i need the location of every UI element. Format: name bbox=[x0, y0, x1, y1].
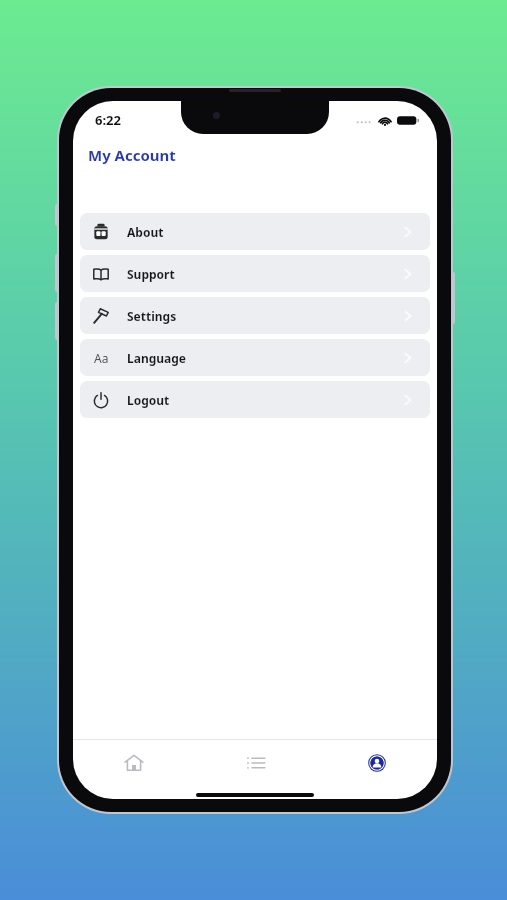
staticText: My Account bbox=[88, 145, 176, 165]
button[interactable]: Support bbox=[80, 255, 430, 292]
button[interactable]: Settings bbox=[80, 297, 430, 334]
staticText: About bbox=[127, 224, 164, 240]
button[interactable]: Logout bbox=[80, 381, 430, 418]
staticText: Settings bbox=[127, 308, 177, 324]
button[interactable]: List bbox=[195, 740, 316, 785]
button[interactable]: Aa bbox=[80, 339, 430, 376]
staticText: Logout bbox=[127, 392, 170, 408]
button[interactable]: Account bbox=[316, 740, 437, 785]
staticText: Support bbox=[127, 266, 175, 282]
staticText: 6:22 bbox=[95, 111, 121, 129]
button[interactable]: Home bbox=[73, 740, 195, 785]
staticText: Aa bbox=[94, 350, 109, 366]
button[interactable]: About bbox=[80, 213, 430, 250]
staticText: Language bbox=[127, 350, 187, 366]
